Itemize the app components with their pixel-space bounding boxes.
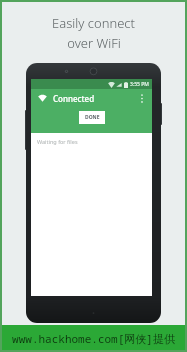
staticText: DONE xyxy=(85,114,100,121)
button[interactable]: DONE xyxy=(79,111,105,124)
staticText: www.hackhome.com[网侠]提供 xyxy=(12,331,175,346)
staticText: Connected xyxy=(53,93,95,104)
staticText: Easily connect xyxy=(52,14,135,32)
staticText: Waiting for files xyxy=(37,138,78,145)
button[interactable]: More options xyxy=(137,90,147,106)
staticText: over WiFi xyxy=(67,34,121,52)
staticText: 3:55 PM xyxy=(130,81,149,88)
button[interactable]: WiFi connected xyxy=(36,92,48,104)
